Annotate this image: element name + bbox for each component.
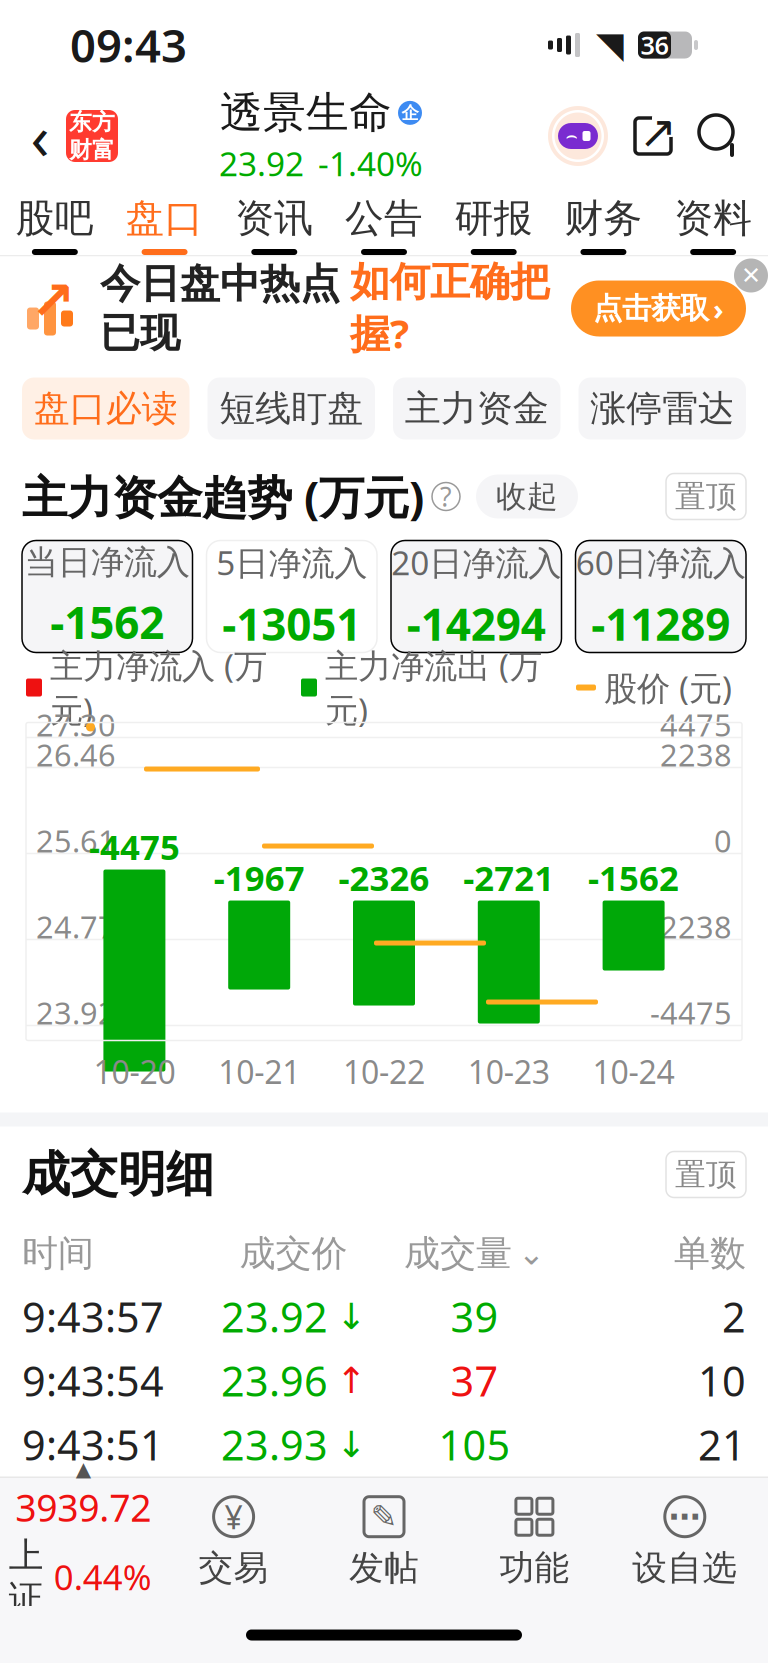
staticText: 23.92 bbox=[221, 1289, 328, 1344]
staticText: 涨停雷达 bbox=[590, 386, 734, 431]
staticText: -13051 bbox=[222, 594, 361, 653]
button[interactable]: 涨停雷达 bbox=[578, 377, 746, 439]
staticText: 0.44% bbox=[54, 1554, 152, 1600]
staticText: -2326 bbox=[338, 854, 429, 900]
staticText: 透景生命 bbox=[220, 87, 392, 139]
staticText: -2238 bbox=[650, 906, 732, 947]
staticText: ¥ bbox=[225, 1495, 243, 1538]
staticText: ↗ bbox=[30, 270, 75, 331]
button[interactable]: 关闭广告 bbox=[734, 258, 768, 292]
staticText: 功能 bbox=[499, 1547, 569, 1589]
staticText: 上证 bbox=[9, 1534, 44, 1619]
button[interactable]: 股吧 bbox=[0, 181, 110, 255]
button[interactable]: 发帖 bbox=[309, 1495, 459, 1589]
staticText: 置顶 bbox=[675, 1156, 737, 1193]
staticText: -1.40% bbox=[318, 141, 423, 185]
staticText: ◥ bbox=[596, 25, 624, 65]
staticText: 10-21 bbox=[218, 1050, 300, 1093]
button[interactable]: 设自选 bbox=[610, 1495, 760, 1589]
staticText: 36 bbox=[640, 28, 668, 62]
staticText: 东方 bbox=[69, 108, 115, 136]
staticText: 成交明细 bbox=[22, 1145, 214, 1204]
staticText: 4475 bbox=[660, 704, 732, 745]
staticText: 当日净流入 bbox=[25, 542, 190, 583]
staticText: 单数 bbox=[674, 1231, 746, 1276]
staticText: 21 bbox=[698, 1417, 746, 1472]
button[interactable]: ▲ bbox=[8, 1458, 158, 1626]
button[interactable]: 智能助手 bbox=[548, 106, 608, 166]
button[interactable]: 东方财富 bbox=[66, 110, 118, 162]
button[interactable]: 当日净流入 bbox=[22, 540, 192, 652]
staticText: 10-20 bbox=[93, 1050, 175, 1093]
staticText: -1967 bbox=[214, 854, 305, 900]
staticText: ⌢ bbox=[565, 127, 577, 145]
button[interactable]: 盘口 bbox=[110, 181, 219, 255]
button[interactable]: 9:43:57 bbox=[0, 1284, 768, 1348]
staticText: 10-24 bbox=[593, 1050, 675, 1093]
staticText: 10-23 bbox=[468, 1050, 550, 1093]
staticText: 盘口必读 bbox=[34, 386, 178, 431]
staticText: ↑ bbox=[336, 1360, 366, 1401]
staticText: 公告 bbox=[345, 194, 423, 242]
button[interactable]: 收起 bbox=[476, 474, 578, 518]
button[interactable]: 资讯 bbox=[219, 181, 329, 255]
staticText: 财富 bbox=[69, 136, 115, 164]
staticText: -14294 bbox=[407, 594, 546, 653]
staticText: 资料 bbox=[674, 194, 752, 242]
staticText: ↗ bbox=[639, 106, 677, 158]
button[interactable]: 研报 bbox=[439, 181, 549, 255]
staticText: 26.46 bbox=[36, 734, 116, 775]
staticText: 09:43 bbox=[70, 15, 187, 75]
staticText: 37 bbox=[450, 1353, 498, 1408]
staticText: -4475 bbox=[650, 992, 732, 1033]
button[interactable]: 返回 bbox=[18, 105, 62, 167]
button[interactable]: 分享 bbox=[622, 105, 684, 167]
button[interactable]: 5日净流入 bbox=[206, 540, 377, 652]
button[interactable]: 资料 bbox=[658, 181, 768, 255]
staticText: ‹ bbox=[30, 95, 49, 177]
button[interactable]: 点击获取 bbox=[571, 280, 746, 336]
staticText: ? bbox=[440, 479, 452, 514]
button[interactable]: 短线盯盘 bbox=[207, 377, 375, 439]
button[interactable]: 主力资金 bbox=[393, 377, 560, 439]
staticText: 9:43:54 bbox=[22, 1353, 164, 1408]
staticText: 收起 bbox=[496, 478, 558, 515]
staticText: ⌄ bbox=[518, 1235, 545, 1272]
button[interactable]: 置顶 bbox=[666, 1151, 746, 1197]
staticText: 设自选 bbox=[632, 1547, 737, 1589]
button[interactable]: 说明 bbox=[432, 482, 460, 510]
staticText: 105 bbox=[438, 1417, 510, 1472]
staticText: 主力资金趋势 (万元) bbox=[22, 466, 424, 527]
staticText: 9:43:57 bbox=[22, 1289, 164, 1344]
button[interactable]: 9:43:51 bbox=[0, 1412, 768, 1476]
staticText: 今日盘中热点已现 bbox=[100, 259, 340, 358]
staticText: -11289 bbox=[591, 594, 730, 653]
staticText: 27.30 bbox=[36, 704, 116, 745]
staticText: 9:43:51 bbox=[22, 1417, 164, 1472]
staticText: 发帖 bbox=[349, 1547, 419, 1589]
button[interactable]: 置顶 bbox=[666, 473, 746, 519]
staticText: 成交量 bbox=[404, 1231, 512, 1276]
staticText: 主力净流出 (万元) bbox=[325, 643, 542, 732]
button[interactable]: 20日净流入 bbox=[391, 540, 561, 652]
button[interactable]: 公告 bbox=[329, 181, 439, 255]
staticText: 23.92 bbox=[219, 141, 304, 185]
button[interactable]: 60日净流入 bbox=[575, 540, 746, 652]
staticText: 23.96 bbox=[221, 1353, 328, 1408]
staticText: ⋯ bbox=[669, 1498, 701, 1535]
button[interactable]: 盘口必读 bbox=[22, 377, 189, 439]
button[interactable]: 成交量 bbox=[384, 1231, 565, 1276]
button[interactable]: 交易 bbox=[158, 1495, 309, 1589]
button[interactable]: 功能 bbox=[459, 1495, 610, 1589]
button[interactable]: 9:43:54 bbox=[0, 1348, 768, 1412]
staticText: 如何正确把握? bbox=[350, 257, 550, 360]
staticText: 2238 bbox=[660, 734, 732, 775]
staticText: ↓ bbox=[336, 1296, 366, 1337]
staticText: 5日净流入 bbox=[216, 540, 367, 584]
staticText: 短线盯盘 bbox=[219, 386, 363, 431]
button[interactable]: 财务 bbox=[549, 181, 658, 255]
staticText: 资讯 bbox=[235, 194, 313, 242]
button[interactable]: 搜索 bbox=[690, 106, 750, 166]
staticText: 3939.72 bbox=[15, 1482, 151, 1532]
staticText: -4475 bbox=[89, 823, 180, 869]
